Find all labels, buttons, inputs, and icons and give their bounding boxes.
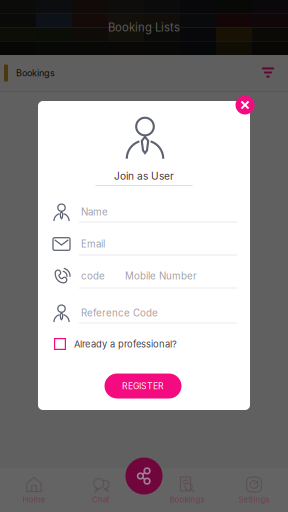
staticText: Chat — [92, 495, 110, 504]
button[interactable]: Home — [2, 473, 66, 512]
staticText: Booking Lists — [108, 21, 180, 34]
staticText: Email — [81, 238, 105, 250]
button[interactable]: Bookings — [155, 473, 219, 512]
staticText: Name — [81, 206, 108, 218]
button[interactable]: Filter bookings — [256, 61, 280, 85]
staticText: REGISTER — [122, 381, 164, 391]
button[interactable]: Close — [235, 95, 254, 114]
staticText: Bookings — [169, 495, 204, 504]
staticText: Join as User — [114, 170, 174, 182]
staticText: Bookings — [16, 67, 55, 78]
staticText: Already a professional? — [74, 338, 177, 350]
staticText: Mobile Number — [125, 270, 197, 282]
button[interactable]: Already a professional? — [54, 336, 204, 352]
button[interactable]: REGISTER — [104, 373, 181, 398]
button[interactable]: Settings — [222, 473, 286, 512]
staticText: code — [81, 270, 105, 282]
staticText: Reference Code — [81, 307, 158, 319]
staticText: Settings — [238, 495, 269, 504]
staticText: Home — [22, 495, 45, 504]
button[interactable]: New booking — [125, 457, 162, 494]
button[interactable]: Chat — [69, 473, 133, 512]
